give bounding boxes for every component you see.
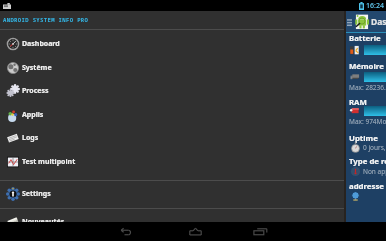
staticText: Non appl (363, 167, 386, 176)
staticText: Test multipoint (22, 157, 76, 167)
button[interactable]: Settings (0, 181, 344, 207)
staticText: Settings (22, 189, 51, 199)
staticText: addresse IP (349, 181, 386, 192)
staticText: Dashboard (371, 16, 386, 28)
button[interactable]: Applis (0, 103, 344, 127)
staticText: Dashboard (22, 39, 60, 49)
staticText: Logs (22, 133, 39, 143)
staticText: Applis (22, 110, 44, 120)
staticText: 0 jours, 0 (363, 143, 386, 152)
button[interactable]: Nouveautés (0, 209, 344, 234)
button[interactable]: Dashboard (346, 11, 386, 32)
button[interactable]: Recents (243, 222, 277, 241)
button[interactable]: Logs (0, 126, 344, 150)
staticText: 16:24 (366, 1, 384, 11)
staticText: ANDROID SYSTEM INFO PRO (3, 16, 89, 24)
staticText: Système (22, 63, 52, 73)
staticText: Max: 28236.87 (349, 83, 386, 92)
button[interactable]: Back (107, 222, 141, 241)
staticText: Type de réseau (349, 156, 386, 167)
staticText: Process (22, 86, 49, 96)
staticText: Uptime (349, 133, 378, 144)
staticText: RAM (349, 97, 367, 108)
staticText: Batterie (349, 33, 381, 44)
staticText: Mémoire interne (349, 61, 386, 72)
staticText: Nouveautés (22, 217, 65, 227)
button[interactable]: Test multipoint (0, 150, 344, 174)
button[interactable]: Process (0, 79, 344, 103)
button[interactable]: Système (0, 56, 344, 80)
staticText: Max: 974Mo Li (349, 117, 386, 126)
button[interactable]: Dashboard (0, 32, 344, 56)
button[interactable]: Home (178, 222, 212, 241)
